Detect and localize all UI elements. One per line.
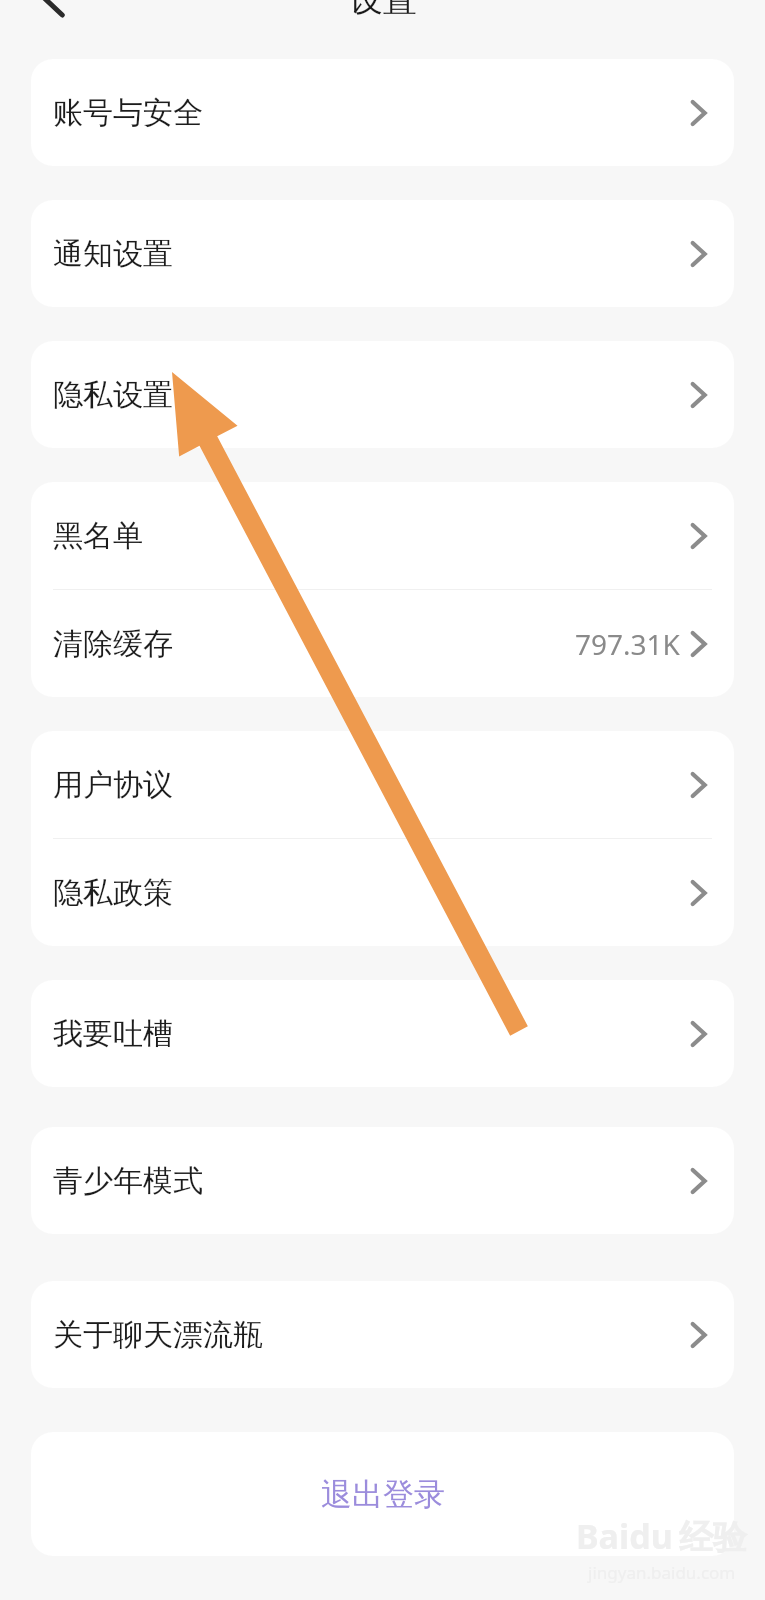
button[interactable]: 黑名单	[31, 482, 734, 589]
button[interactable]: 我要吐槽	[31, 980, 734, 1087]
staticText: 经验	[679, 1516, 747, 1559]
button[interactable]: 通知设置	[31, 200, 734, 307]
button[interactable]: 青少年模式	[31, 1127, 734, 1234]
staticText: 账号与安全	[53, 94, 203, 132]
staticText: Baidu	[576, 1513, 673, 1559]
button[interactable]: 退出登录	[31, 1432, 734, 1556]
button[interactable]: 清除缓存	[31, 590, 734, 697]
staticText: 黑名单	[53, 517, 143, 555]
staticText: 隐私政策	[53, 874, 173, 912]
button[interactable]: 账号与安全	[31, 59, 734, 166]
button[interactable]: 用户协议	[31, 731, 734, 838]
staticText: 797.31K	[575, 625, 680, 663]
staticText: 通知设置	[53, 235, 173, 273]
button[interactable]: 返回	[20, 0, 84, 18]
staticText: 退出登录	[321, 1475, 445, 1514]
button[interactable]: 隐私设置	[31, 341, 734, 448]
staticText: 设置	[349, 0, 417, 18]
staticText: 青少年模式	[53, 1162, 203, 1200]
staticText: 用户协议	[53, 766, 173, 804]
staticText: 关于聊天漂流瓶	[53, 1316, 263, 1354]
staticText: 隐私设置	[53, 376, 173, 414]
button[interactable]: 隐私政策	[31, 839, 734, 946]
button[interactable]: 关于聊天漂流瓶	[31, 1281, 734, 1388]
staticText: 清除缓存	[53, 625, 173, 663]
staticText: 我要吐槽	[53, 1015, 173, 1053]
